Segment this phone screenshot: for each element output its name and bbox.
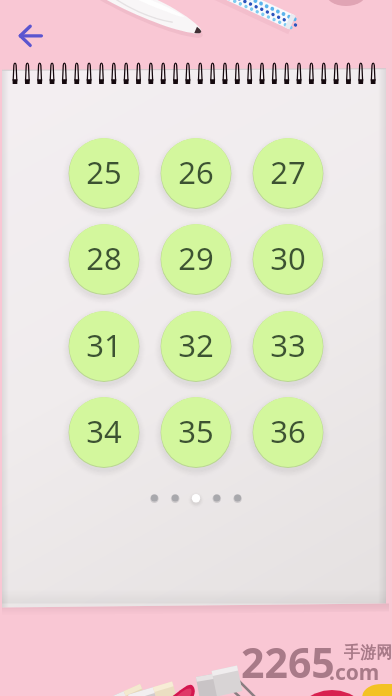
button[interactable]: 29 bbox=[155, 220, 237, 304]
staticText: 33 bbox=[270, 324, 306, 366]
staticText: 27 bbox=[270, 151, 306, 193]
button[interactable]: 26 bbox=[155, 134, 237, 218]
staticText: 28 bbox=[86, 237, 122, 279]
button[interactable]: 36 bbox=[247, 393, 329, 477]
staticText: 32 bbox=[178, 324, 214, 366]
staticText: .com bbox=[329, 658, 380, 687]
staticText: 31 bbox=[86, 324, 122, 366]
button[interactable]: Back bbox=[10, 18, 52, 60]
staticText: 25 bbox=[86, 151, 122, 193]
staticText: 手游网 bbox=[344, 643, 392, 663]
staticText: 36 bbox=[270, 410, 306, 452]
button[interactable]: 27 bbox=[247, 134, 329, 218]
button[interactable]: 33 bbox=[247, 307, 329, 391]
button[interactable]: 30 bbox=[247, 220, 329, 304]
staticText: 35 bbox=[178, 410, 214, 452]
staticText: 26 bbox=[178, 151, 214, 193]
staticText: 29 bbox=[178, 237, 214, 279]
button[interactable]: 25 bbox=[63, 134, 145, 218]
button[interactable]: 28 bbox=[63, 220, 145, 304]
staticText: 2265 bbox=[241, 634, 335, 690]
button[interactable]: 32 bbox=[155, 307, 237, 391]
staticText: 30 bbox=[270, 237, 306, 279]
staticText: 34 bbox=[86, 410, 122, 452]
button[interactable]: 34 bbox=[63, 393, 145, 477]
button[interactable]: 31 bbox=[63, 307, 145, 391]
button[interactable]: 35 bbox=[155, 393, 237, 477]
